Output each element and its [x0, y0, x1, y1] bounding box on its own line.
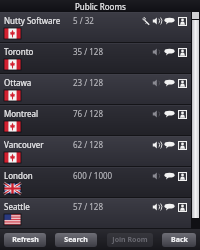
- button[interactable]: Members: [176, 170, 188, 182]
- staticText: Search: [64, 235, 88, 245]
- button[interactable]: Join Room: [107, 233, 153, 247]
- button[interactable]: Audio: [151, 46, 163, 58]
- button[interactable]: Refresh: [4, 233, 46, 247]
- staticText: 5 / 32: [73, 15, 94, 26]
- button[interactable]: Members: [176, 46, 188, 58]
- staticText: 57 / 128: [73, 201, 104, 212]
- button[interactable]: Chat: [163, 76, 176, 89]
- staticText: Toronto: [4, 46, 34, 57]
- button[interactable]: Members: [176, 201, 188, 213]
- button[interactable]: Montreal: [0, 105, 200, 136]
- staticText: Public Rooms: [75, 1, 126, 12]
- staticText: Join Room: [112, 235, 148, 245]
- button[interactable]: London: [0, 167, 200, 198]
- staticText: Seattle: [4, 201, 30, 212]
- staticText: 62 / 128: [73, 139, 104, 150]
- button[interactable]: Search: [55, 233, 97, 247]
- staticText: Refresh: [12, 235, 39, 245]
- button[interactable]: Chat: [163, 107, 176, 120]
- button[interactable]: Chat: [163, 14, 176, 27]
- button[interactable]: Ottawa: [0, 74, 200, 105]
- button[interactable]: Chat: [163, 45, 176, 58]
- staticText: 600 / 1000: [73, 170, 113, 181]
- button[interactable]: Audio: [151, 108, 163, 120]
- button[interactable]: Audio: [151, 201, 163, 213]
- button[interactable]: Seattle: [0, 198, 200, 229]
- other: Scroll: [191, 12, 200, 229]
- staticText: London: [4, 170, 33, 181]
- button[interactable]: Locked room: [139, 15, 151, 27]
- staticText: Vancouver: [4, 139, 44, 150]
- button[interactable]: Members: [176, 108, 188, 120]
- button[interactable]: Chat: [163, 200, 176, 213]
- button[interactable]: Audio: [151, 170, 163, 182]
- button[interactable]: Members: [176, 77, 188, 89]
- staticText: Nutty Software: [4, 15, 61, 26]
- staticText: Ottawa: [4, 77, 32, 88]
- staticText: 23 / 128: [73, 77, 104, 88]
- button[interactable]: Audio: [151, 77, 163, 89]
- button[interactable]: Nutty Software: [0, 12, 200, 43]
- button[interactable]: Chat: [163, 138, 176, 151]
- button[interactable]: Toronto: [0, 43, 200, 74]
- button[interactable]: Chat: [163, 169, 176, 182]
- button[interactable]: Back: [162, 233, 196, 247]
- staticText: Montreal: [4, 108, 39, 119]
- button[interactable]: Audio: [151, 139, 163, 151]
- button[interactable]: Members: [176, 139, 188, 151]
- button[interactable]: Members: [176, 15, 188, 27]
- button[interactable]: Vancouver: [0, 136, 200, 167]
- staticText: 35 / 128: [73, 46, 104, 57]
- staticText: Back: [171, 235, 188, 245]
- button[interactable]: Audio: [151, 15, 163, 27]
- staticText: 76 / 128: [73, 108, 104, 119]
